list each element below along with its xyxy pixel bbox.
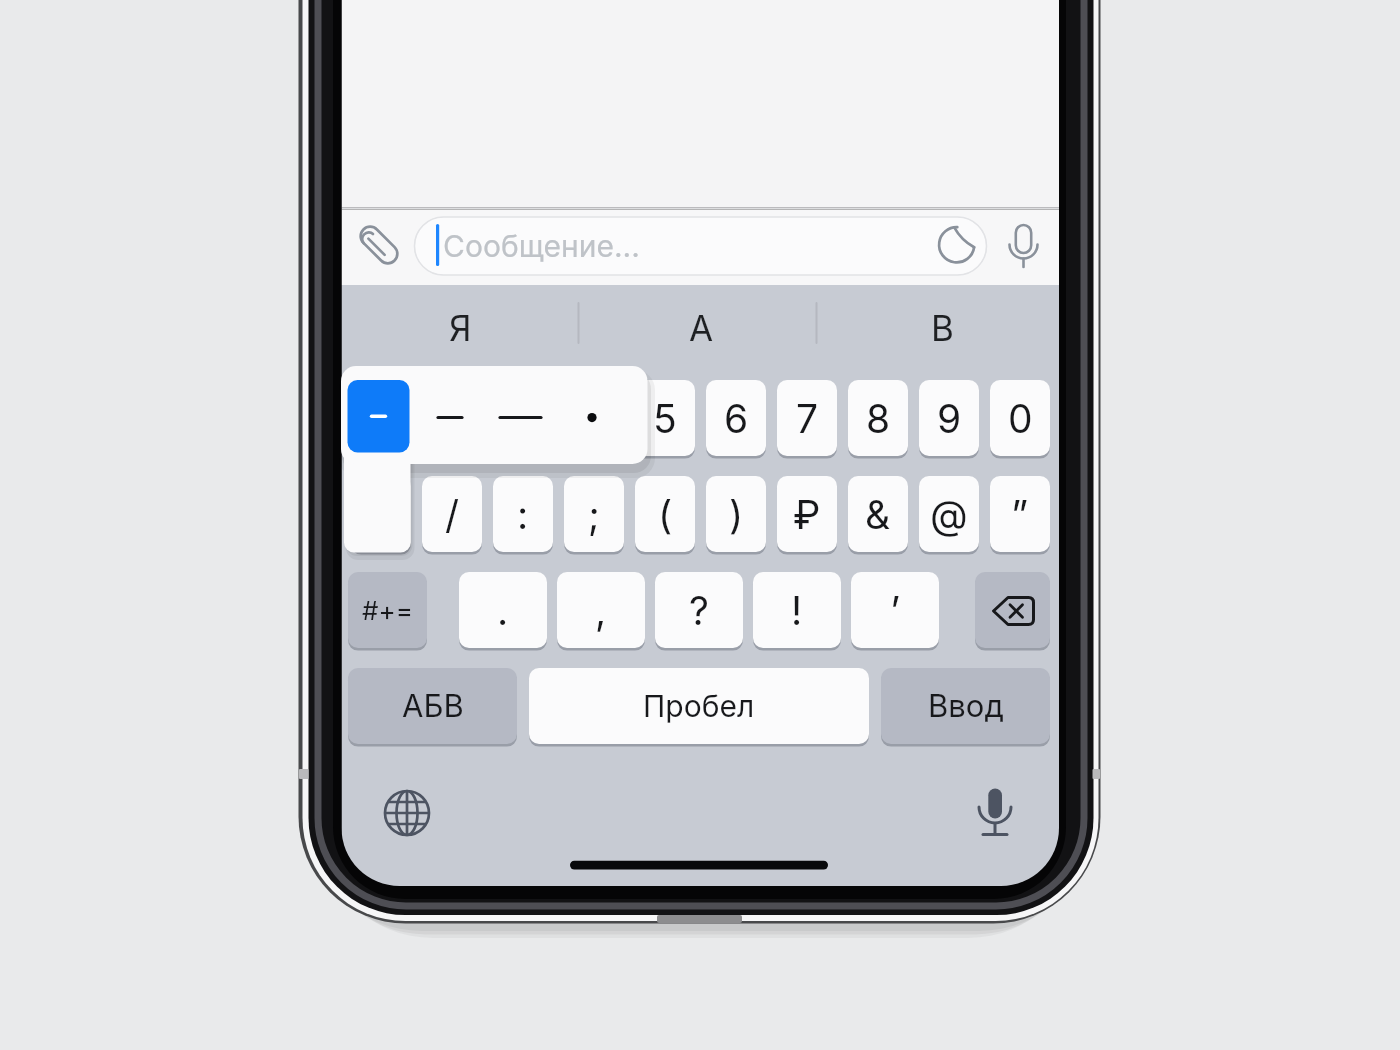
staticText: ₽ <box>793 491 821 538</box>
staticText: ’ <box>890 587 901 634</box>
button[interactable]: , <box>557 572 645 648</box>
staticText: Ввод <box>928 687 1004 725</box>
button[interactable]: АБВ <box>348 668 517 744</box>
staticText: : <box>517 491 529 538</box>
staticText: 0 <box>1008 395 1033 442</box>
button[interactable]: 6 <box>706 380 766 456</box>
staticText: Пробел <box>643 688 755 724</box>
button[interactable]: 8 <box>848 380 908 456</box>
button[interactable]: 9 <box>919 380 979 456</box>
staticText: Сообщение... <box>443 228 640 264</box>
staticText: @ <box>930 491 968 538</box>
button[interactable]: - <box>351 476 411 552</box>
button[interactable]: ’ <box>851 572 939 648</box>
staticText: #+= <box>362 595 413 626</box>
button[interactable]: 3 <box>493 380 553 456</box>
staticText: 2 <box>440 395 464 442</box>
staticText: 4 <box>581 395 607 442</box>
staticText: ” <box>1011 491 1029 538</box>
button[interactable]: В <box>825 287 1059 369</box>
staticText: ) <box>729 491 744 538</box>
button[interactable]: #+= <box>348 572 427 648</box>
button[interactable]: 4 <box>564 380 624 456</box>
staticText: А <box>689 307 714 349</box>
staticText: 3 <box>511 395 536 442</box>
button[interactable]: Сообщение... <box>443 217 843 275</box>
staticText: 5 <box>653 395 677 442</box>
staticText: . <box>497 587 509 634</box>
staticText: , <box>595 587 607 634</box>
button[interactable]: ! <box>753 572 841 648</box>
button[interactable]: ) <box>706 476 766 552</box>
button[interactable]: ₽ <box>777 476 837 552</box>
button[interactable]: ( <box>635 476 695 552</box>
staticText: ! <box>791 587 803 634</box>
staticText: 9 <box>937 395 962 442</box>
button[interactable]: . <box>459 572 547 648</box>
button[interactable]: ; <box>564 476 624 552</box>
button[interactable]: Ввод <box>881 668 1050 744</box>
button[interactable] <box>383 789 431 837</box>
button[interactable]: 5 <box>635 380 695 456</box>
button[interactable] <box>1000 221 1048 269</box>
staticText: 8 <box>866 395 891 442</box>
staticText: АБВ <box>402 687 464 725</box>
button[interactable]: & <box>848 476 908 552</box>
staticText: ; <box>588 491 600 538</box>
button[interactable]: 0 <box>990 380 1050 456</box>
button[interactable]: 7 <box>777 380 837 456</box>
staticText: ( <box>658 491 673 538</box>
staticText: 6 <box>724 395 749 442</box>
button[interactable]: ” <box>990 476 1050 552</box>
button[interactable] <box>971 789 1019 837</box>
button[interactable]: 1 <box>351 380 411 456</box>
button[interactable]: / <box>422 476 482 552</box>
staticText: 1 <box>373 395 389 442</box>
staticText: & <box>865 491 891 538</box>
button[interactable]: : <box>493 476 553 552</box>
staticText: В <box>931 307 954 349</box>
staticText: 7 <box>796 395 819 442</box>
button[interactable]: @ <box>919 476 979 552</box>
button[interactable] <box>932 221 980 269</box>
button[interactable]: Я <box>342 287 578 369</box>
button[interactable]: Пробел <box>529 668 869 744</box>
button[interactable]: А <box>587 287 815 369</box>
staticText: ? <box>689 587 709 634</box>
button[interactable]: ? <box>655 572 743 648</box>
staticText: Я <box>449 307 472 349</box>
button[interactable] <box>975 572 1050 648</box>
button[interactable] <box>355 221 403 269</box>
staticText: / <box>445 491 460 538</box>
button[interactable]: 2 <box>422 380 482 456</box>
